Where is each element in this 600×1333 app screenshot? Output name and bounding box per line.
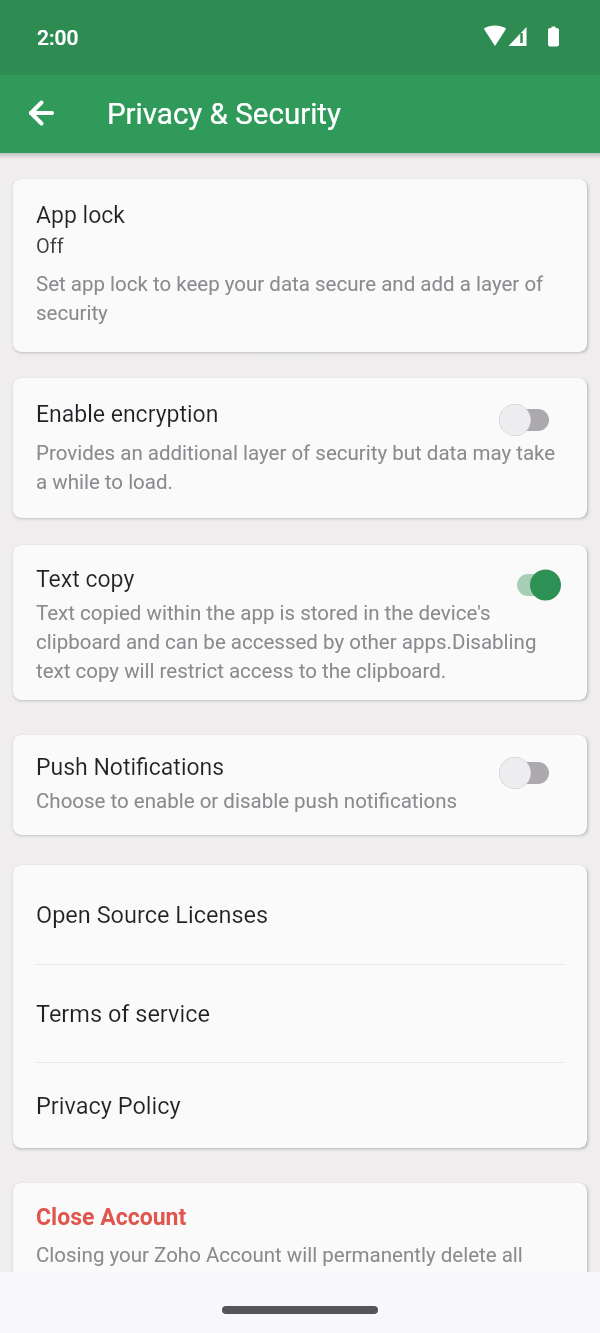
staticText: Terms of service xyxy=(36,1000,210,1028)
staticText: Closing your Zoho Account will permanent… xyxy=(36,1243,523,1267)
button[interactable]: Push Notifications xyxy=(13,735,587,835)
button[interactable]: App lock xyxy=(13,179,587,352)
staticText: Open Source Licenses xyxy=(36,901,269,929)
button[interactable]: Enable encryption xyxy=(13,378,587,518)
staticText: Set app lock to keep your data secure an… xyxy=(36,272,544,325)
staticText: Close Account xyxy=(36,1204,187,1231)
staticText: 2:00 xyxy=(37,26,79,51)
staticText: Push Notifications xyxy=(36,754,225,781)
staticText: Enable encryption xyxy=(36,401,219,428)
button[interactable] xyxy=(499,569,559,601)
staticText: Privacy & Security xyxy=(107,97,341,132)
button[interactable]: Terms of service xyxy=(13,965,587,1062)
button[interactable] xyxy=(499,757,559,789)
staticText: Text copy xyxy=(36,566,135,593)
staticText: Choose to enable or disable push notific… xyxy=(36,789,458,813)
button[interactable] xyxy=(23,99,53,129)
staticText: Text copied within the app is stored in … xyxy=(36,601,537,683)
button[interactable] xyxy=(499,404,559,436)
staticText: Provides an additional layer of security… xyxy=(36,441,556,494)
button[interactable]: Text copy xyxy=(13,545,587,700)
button[interactable]: Open Source Licenses xyxy=(13,865,587,964)
staticText: Off xyxy=(36,234,64,257)
button[interactable]: Privacy Policy xyxy=(13,1063,587,1148)
staticText: App lock xyxy=(36,202,125,229)
staticText: Privacy Policy xyxy=(36,1092,181,1120)
button[interactable]: Close Account xyxy=(13,1183,587,1307)
